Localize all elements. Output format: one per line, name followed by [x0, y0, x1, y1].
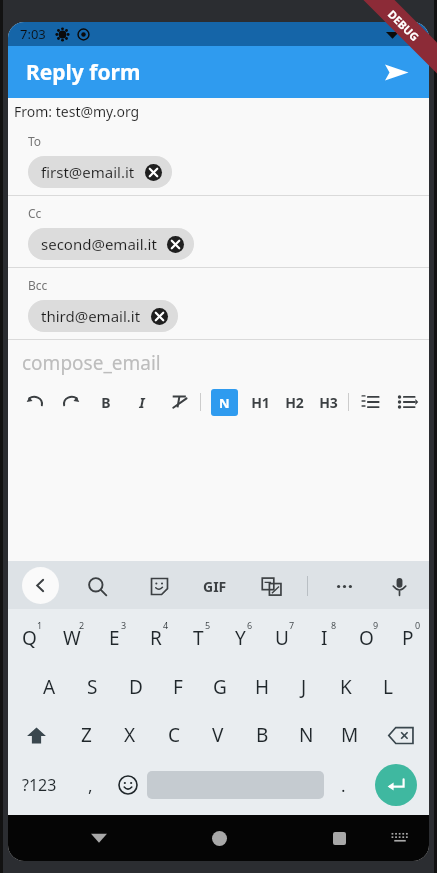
staticText: Z	[81, 722, 92, 748]
staticText: B	[256, 722, 269, 748]
button[interactable]: second@email.it	[28, 228, 194, 260]
button[interactable]: Clear formatting	[168, 387, 190, 417]
button[interactable]: Undo	[24, 387, 46, 417]
staticText: 0	[415, 619, 421, 631]
button[interactable]: Redo	[60, 387, 82, 417]
staticText: compose_email	[22, 350, 161, 376]
staticText: B	[101, 393, 111, 412]
button[interactable]: .	[324, 763, 362, 807]
button[interactable]: GIF	[203, 571, 227, 601]
button[interactable]: ,	[71, 763, 109, 807]
button[interactable]: Bcc	[8, 268, 429, 339]
button[interactable]: Voice input	[383, 570, 415, 602]
staticText: J	[301, 674, 307, 700]
staticText: 8	[331, 619, 337, 631]
button[interactable]: G	[199, 665, 241, 709]
button[interactable]: I	[303, 615, 345, 661]
button[interactable]: Emoji	[109, 763, 147, 807]
button[interactable]: Q	[8, 615, 51, 661]
button[interactable]: W	[51, 615, 93, 661]
staticText: 2	[79, 619, 85, 631]
staticText: To	[28, 133, 42, 149]
button[interactable]: Shift	[8, 713, 64, 757]
button[interactable]: Z	[64, 713, 108, 757]
staticText: H1	[251, 393, 270, 412]
button[interactable]: H3	[318, 387, 338, 417]
button[interactable]: E	[93, 615, 135, 661]
button[interactable]: Switch keyboard	[385, 823, 415, 853]
staticText: Bcc	[28, 277, 48, 293]
button[interactable]: Backspace	[372, 713, 429, 757]
button[interactable]: L	[367, 665, 409, 709]
button[interactable]: V	[196, 713, 240, 757]
staticText: GIF	[203, 577, 227, 596]
staticText: W	[63, 625, 81, 651]
button[interactable]: A	[28, 665, 71, 709]
staticText: P	[402, 625, 414, 651]
staticText: 7	[289, 619, 295, 631]
staticText: Q	[22, 625, 37, 651]
staticText: K	[340, 674, 352, 700]
staticText: I	[321, 625, 328, 651]
button[interactable]: J	[283, 665, 325, 709]
staticText: M	[341, 722, 359, 748]
button[interactable]: O	[345, 615, 387, 661]
button[interactable]: F	[157, 665, 199, 709]
staticText: H3	[319, 393, 338, 412]
staticText: N	[299, 722, 314, 748]
staticText: 3	[121, 619, 127, 631]
staticText: O	[359, 625, 374, 651]
button[interactable]: Stickers	[143, 570, 175, 602]
staticText: V	[212, 722, 224, 748]
button[interactable]: U	[261, 615, 303, 661]
button[interactable]: H	[241, 665, 283, 709]
button[interactable]: To	[8, 124, 429, 195]
button[interactable]: Hide keyboard	[73, 815, 125, 861]
button[interactable]: B	[96, 387, 116, 417]
button[interactable]: first@email.it	[28, 156, 172, 188]
button[interactable]: H1	[250, 387, 270, 417]
button[interactable]: P	[387, 615, 429, 661]
staticText: 9	[373, 619, 379, 631]
staticText: 5	[205, 619, 211, 631]
button[interactable]: K	[325, 665, 367, 709]
button[interactable]: C	[152, 713, 196, 757]
staticText: D	[129, 674, 143, 700]
other: Remove third@email.it	[151, 308, 168, 325]
button[interactable]: Search	[81, 570, 113, 602]
button[interactable]: X	[108, 713, 152, 757]
button[interactable]: S	[71, 665, 114, 709]
button[interactable]: N	[284, 713, 328, 757]
staticText: T	[193, 625, 204, 651]
staticText: I	[139, 393, 145, 412]
button[interactable]: Translate	[255, 570, 287, 602]
staticText: X	[124, 722, 136, 748]
button[interactable]: H2	[284, 387, 304, 417]
other: Remove second@email.it	[167, 236, 184, 253]
button[interactable]: Home	[193, 815, 245, 861]
button[interactable]: N	[211, 389, 238, 416]
staticText: C	[168, 722, 181, 748]
button[interactable]: third@email.it	[28, 300, 178, 332]
button[interactable]: Enter	[375, 764, 417, 806]
button[interactable]: R	[135, 615, 177, 661]
button[interactable]: Y	[219, 615, 261, 661]
staticText: N	[219, 394, 230, 412]
button[interactable]: B	[240, 713, 284, 757]
button[interactable]: Indent	[395, 387, 417, 417]
button[interactable]: ?123	[8, 763, 71, 807]
button[interactable]: T	[177, 615, 219, 661]
button[interactable]: I	[132, 387, 152, 417]
button[interactable]: More options	[328, 570, 360, 602]
button[interactable]: Back	[22, 567, 59, 604]
button[interactable]: Send	[377, 53, 415, 91]
button[interactable]: Cc	[8, 196, 429, 267]
staticText: ?123	[22, 774, 57, 796]
button[interactable]: M	[328, 713, 372, 757]
button[interactable]: Ordered list	[359, 387, 381, 417]
staticText: H	[255, 674, 270, 700]
button[interactable]: D	[114, 665, 157, 709]
staticText: first@email.it	[41, 162, 135, 182]
button[interactable]: Recents	[313, 815, 365, 861]
